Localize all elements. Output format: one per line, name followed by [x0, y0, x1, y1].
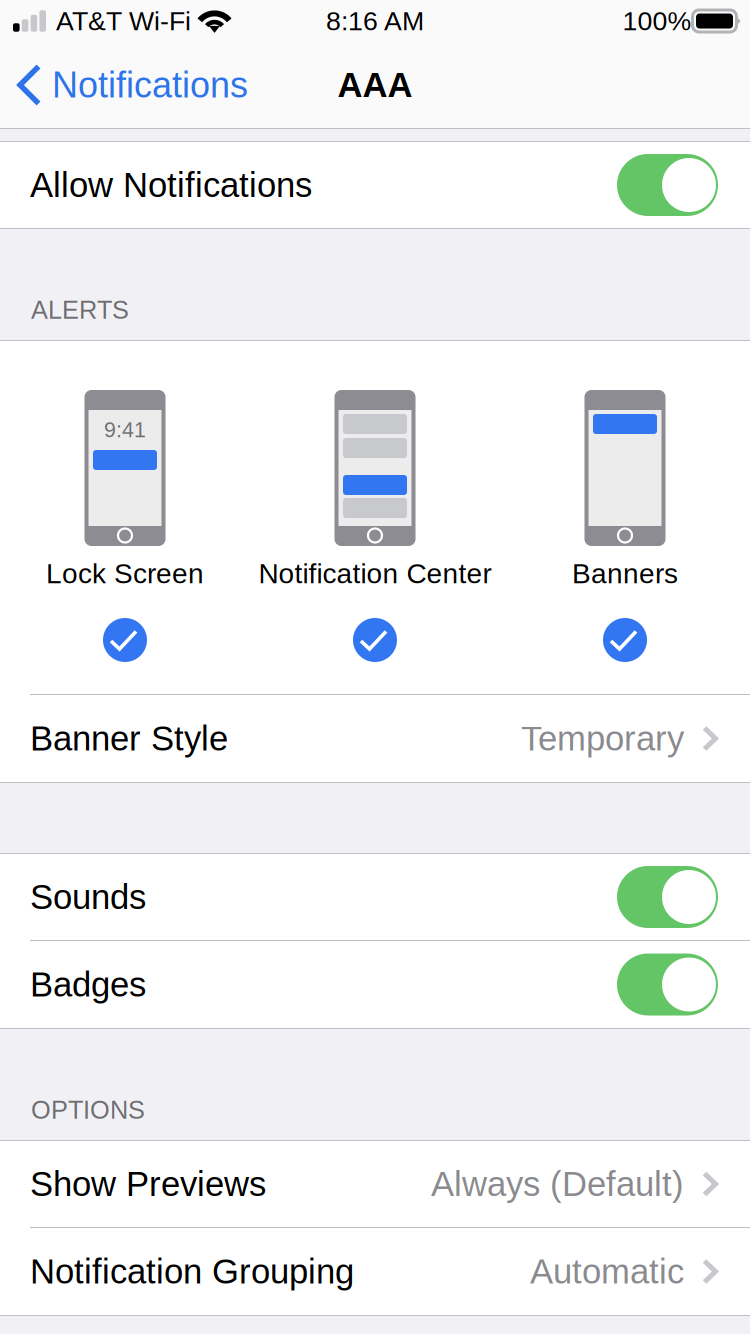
staticText: Notifications [52, 65, 248, 105]
button[interactable]: Banner Style [0, 695, 750, 782]
staticText: Badges [30, 965, 146, 1004]
staticText: Banner Style [30, 719, 228, 758]
staticText: OPTIONS [31, 1096, 145, 1124]
staticText: Notification Center [258, 558, 491, 589]
staticText: AT&T Wi-Fi [56, 6, 191, 36]
staticText: Banners [572, 558, 678, 589]
button[interactable]: Notification Center [250, 341, 500, 694]
button[interactable]: Badges [0, 941, 750, 1028]
staticText: 100% [622, 6, 691, 36]
staticText: AAA [337, 66, 412, 104]
button[interactable]: Banners [500, 341, 750, 694]
staticText: Lock Screen [46, 558, 204, 589]
staticText: 8:16 AM [326, 6, 424, 36]
button[interactable]: Notifications [0, 42, 248, 128]
button[interactable]: Allow Notifications [0, 142, 750, 228]
staticText: Allow Notifications [30, 166, 312, 204]
staticText: Always (Default) [431, 1165, 684, 1203]
staticText: Temporary [521, 719, 684, 758]
button[interactable]: Notification Grouping [0, 1228, 750, 1315]
staticText: Show Previews [30, 1165, 266, 1203]
staticText: Sounds [30, 878, 146, 916]
staticText: ALERTS [31, 296, 129, 324]
staticText: Automatic [530, 1252, 684, 1291]
button[interactable]: Show Previews [0, 1141, 750, 1227]
button[interactable]: Sounds [0, 854, 750, 940]
staticText: Notification Grouping [30, 1252, 354, 1291]
staticText: 9:41 [104, 418, 146, 442]
button[interactable]: 9:41 [0, 341, 250, 694]
